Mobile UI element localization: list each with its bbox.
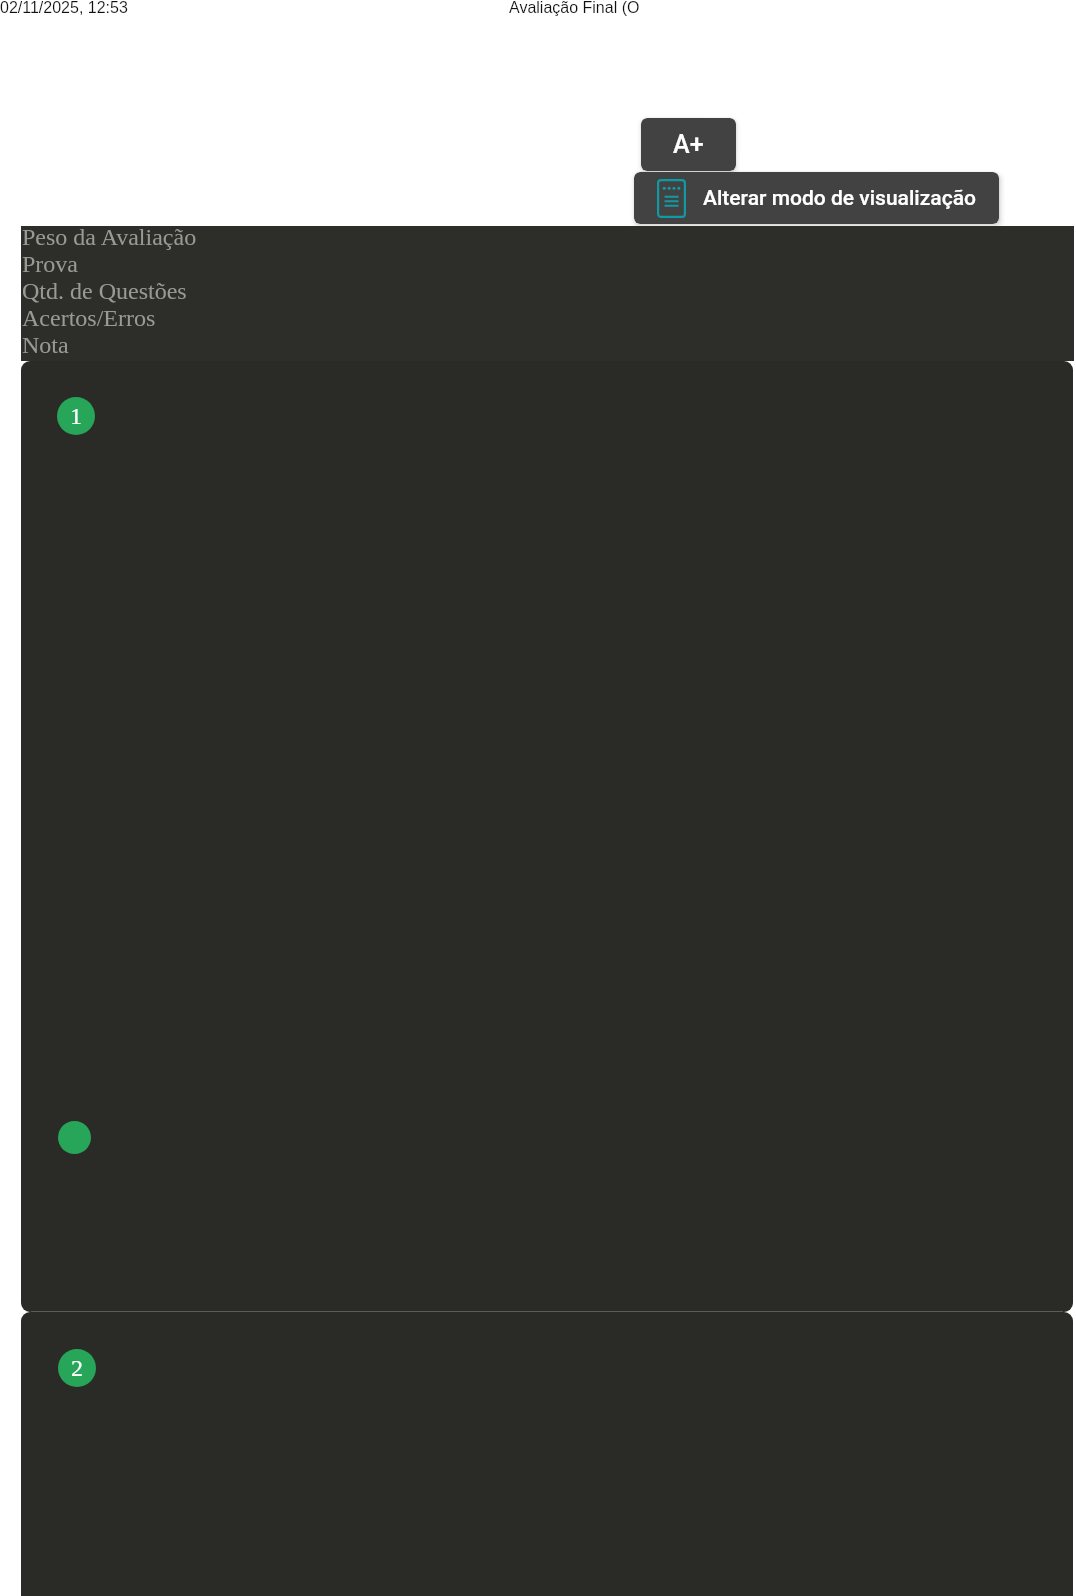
button[interactable]: 2: [21, 1312, 1073, 1596]
staticText: 1: [70, 403, 82, 430]
button[interactable]: Alterar modo de visualização: [634, 172, 999, 224]
staticText: Qtd. de Questões: [22, 278, 187, 305]
staticText: Nota: [22, 332, 69, 359]
staticText: Acertos/Erros: [22, 305, 156, 332]
staticText: Peso da Avaliação: [22, 224, 197, 251]
staticText: Avaliação Final (O: [509, 0, 640, 17]
other: Alterar modo de visualização: [657, 179, 686, 218]
staticText: Prova: [22, 251, 78, 278]
button[interactable]: A+: [641, 118, 736, 171]
staticText: 02/11/2025, 12:53: [0, 0, 128, 17]
staticText: A+: [673, 130, 704, 159]
staticText: Alterar modo de visualização: [703, 186, 976, 211]
staticText: 2: [71, 1355, 83, 1382]
button[interactable]: 1: [21, 361, 1073, 1312]
